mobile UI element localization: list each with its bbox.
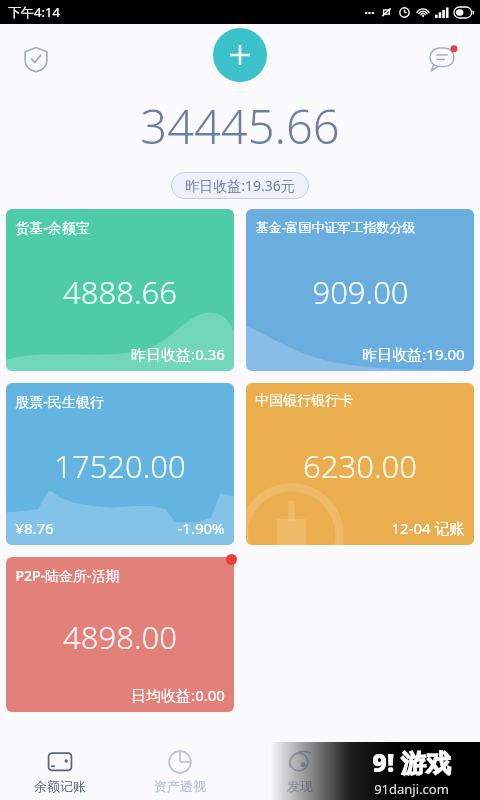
button[interactable]: 中国银行银行卡 — [246, 383, 474, 545]
staticText: 昨日收益:19.36元 — [185, 176, 295, 195]
staticText: ¥8.76 — [15, 518, 54, 538]
staticText: 余额记账 — [34, 778, 86, 794]
staticText: 日均收益:0.00 — [131, 685, 225, 705]
staticText: 昨日收益:19.00 — [362, 344, 465, 364]
staticText: 基金-富国中证军工指数分级 — [255, 218, 416, 236]
staticText: 下午4:14 — [8, 3, 60, 21]
button[interactable]: 昨日收益:19.36元 — [171, 172, 309, 199]
staticText: 4888.66 — [63, 271, 177, 313]
staticText: 货基-余额宝 — [15, 218, 90, 237]
button[interactable]: 安全中心 — [16, 39, 56, 79]
button[interactable]: 资产透视 — [120, 745, 240, 798]
button[interactable]: 添加记账 — [213, 28, 267, 82]
staticText: ··· — [364, 4, 375, 20]
staticText: 9! 游戏 — [372, 745, 451, 779]
button[interactable]: 消息 — [424, 38, 466, 80]
button[interactable]: 货基-余额宝 — [6, 209, 234, 371]
staticText: -1.90% — [177, 518, 225, 538]
staticText: 909.00 — [312, 271, 409, 313]
staticText: 中国银行银行卡 — [255, 392, 353, 410]
button[interactable]: 基金-富国中证军工指数分级 — [246, 209, 474, 371]
staticText: 资产透视 — [154, 778, 206, 794]
staticText: 4898.00 — [63, 616, 177, 658]
button[interactable]: 股票-民生银行 — [6, 383, 234, 545]
staticText: 34445.66 — [140, 94, 340, 158]
staticText: 昨日收益:0.36 — [131, 344, 225, 364]
staticText: P2P-陆金所-活期 — [15, 566, 120, 585]
staticText: 发现 — [287, 778, 313, 794]
staticText: 股票-民生银行 — [15, 392, 104, 411]
staticText: 17520.00 — [54, 445, 186, 487]
button[interactable]: 发现 — [240, 745, 360, 798]
staticText: 91danji.com — [374, 780, 449, 798]
staticText: 12-04 记账 — [391, 518, 465, 538]
staticText: 6230.00 — [303, 445, 417, 487]
button[interactable]: 余额记账 — [0, 745, 120, 798]
button[interactable]: P2P-陆金所-活期 — [6, 557, 234, 712]
